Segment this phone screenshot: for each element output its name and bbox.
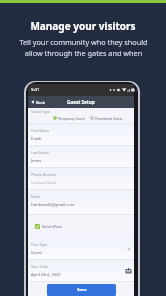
staticText: Frank bbox=[31, 136, 42, 141]
staticText: Manage your visitors bbox=[30, 19, 136, 33]
staticText: Guest Type bbox=[31, 109, 50, 114]
staticText: Back bbox=[36, 100, 46, 105]
staticText: Last Name bbox=[31, 150, 49, 155]
staticText: Start Date bbox=[31, 264, 48, 269]
staticText: Pass Type bbox=[31, 242, 48, 247]
staticText: Email bbox=[31, 194, 41, 199]
staticText: April 23rd, 2023 bbox=[31, 272, 61, 277]
staticText: Permanent Guest bbox=[95, 116, 123, 120]
button[interactable]: Temporary Guest bbox=[53, 116, 85, 120]
button[interactable]: Send ePass bbox=[35, 224, 63, 229]
staticText: Guest Setup bbox=[67, 99, 95, 105]
button[interactable]: Permanent Guest bbox=[90, 116, 123, 120]
button[interactable]: Back bbox=[31, 96, 46, 108]
staticText: Save bbox=[77, 287, 87, 293]
staticText: Contact Used bbox=[31, 180, 57, 185]
staticText: Guest bbox=[31, 250, 42, 255]
staticText: 9:41 bbox=[31, 87, 40, 93]
button[interactable]: Save bbox=[47, 284, 116, 296]
staticText: Jones bbox=[31, 158, 42, 163]
staticText: Send ePass bbox=[42, 224, 63, 229]
staticText: frankmail2@gmail.com bbox=[31, 202, 75, 207]
staticText: Phone Number bbox=[31, 172, 57, 177]
staticText: First Name bbox=[31, 128, 50, 133]
staticText: Tell your community who they should allo… bbox=[19, 37, 148, 59]
staticText: Temporary Guest bbox=[58, 116, 85, 120]
